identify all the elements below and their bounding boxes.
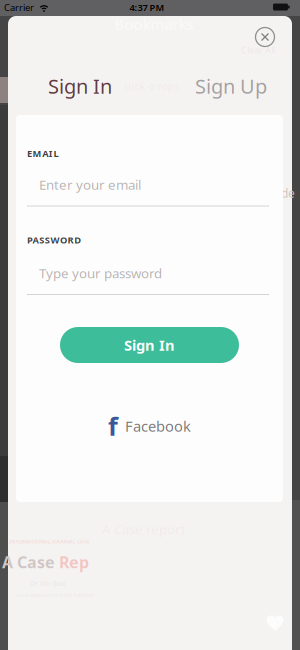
staticText: Sign In bbox=[124, 335, 175, 355]
staticText: Rep bbox=[59, 551, 89, 573]
button[interactable]: Sign Up bbox=[181, 69, 281, 103]
staticText: A Case bbox=[2, 551, 55, 573]
staticText: Facebook bbox=[125, 416, 191, 436]
staticText: Dr Xin Gao bbox=[30, 579, 65, 588]
staticText: Enter your email bbox=[39, 176, 141, 193]
staticText: Bookmarks bbox=[114, 14, 193, 34]
button[interactable]: f bbox=[94, 411, 204, 441]
staticText: EMAIL bbox=[27, 147, 58, 160]
staticText: Carrier bbox=[4, 1, 34, 14]
staticText: Sign In bbox=[48, 73, 112, 99]
staticText: Sign Up bbox=[195, 73, 267, 99]
staticText: PASSWORD bbox=[27, 234, 81, 246]
staticText: de bbox=[281, 185, 295, 201]
staticText: 4:37 PM bbox=[129, 1, 164, 14]
button[interactable]: Enter your email bbox=[27, 168, 269, 212]
staticText: Clear All bbox=[241, 44, 275, 56]
button[interactable]: Sign In bbox=[30, 69, 130, 103]
staticText: f bbox=[108, 409, 118, 443]
button[interactable]: Sign In bbox=[60, 327, 239, 363]
staticText: Type your password bbox=[39, 264, 162, 282]
button[interactable] bbox=[252, 24, 278, 50]
button[interactable]: Type your password bbox=[27, 257, 269, 301]
staticText: INTERNATIONAL JOURNAL CASE bbox=[9, 538, 90, 545]
